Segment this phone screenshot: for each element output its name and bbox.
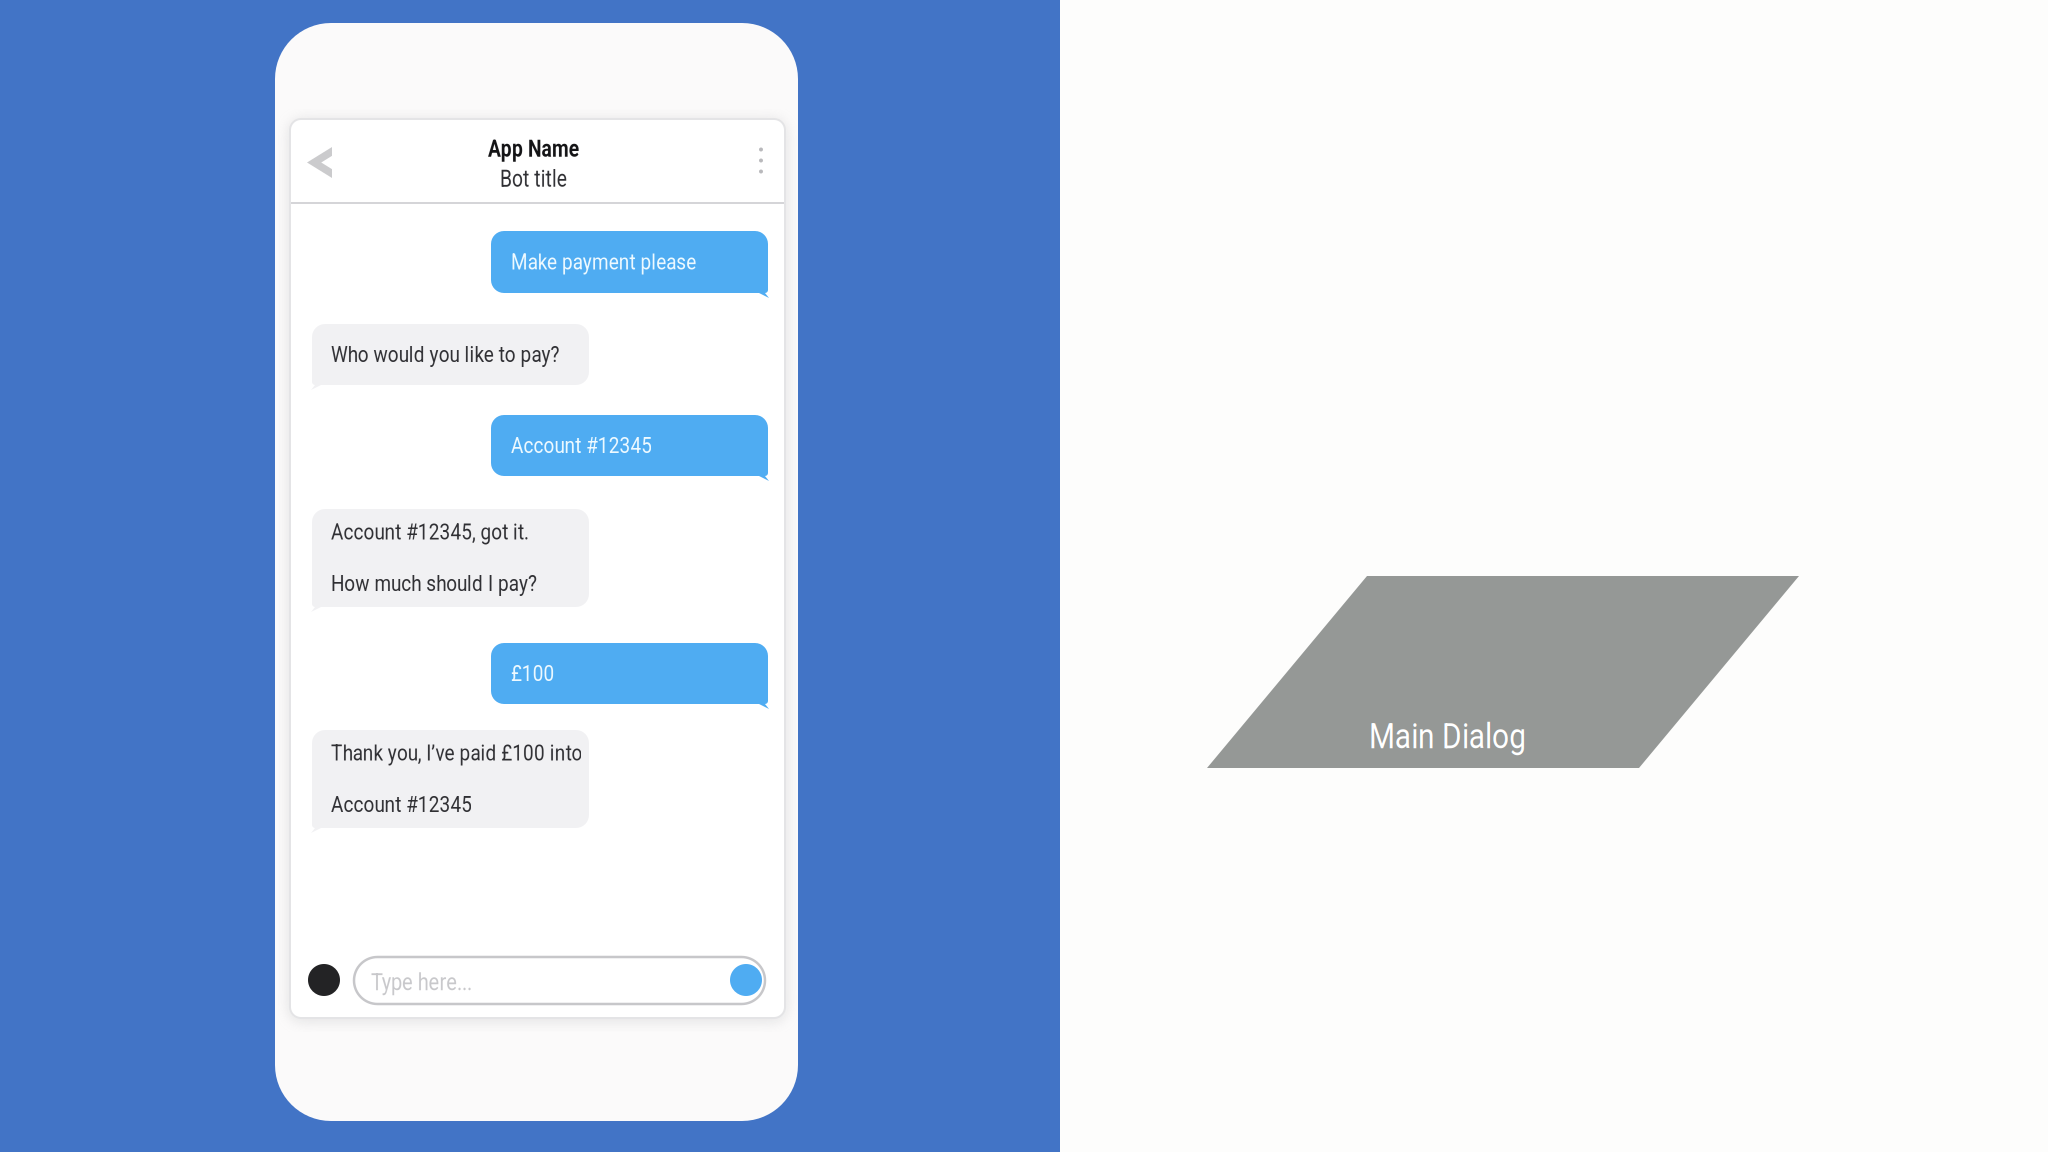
staticText: Account #12345 bbox=[511, 432, 680, 459]
button[interactable]: Account #12345, got it. bbox=[312, 509, 589, 607]
button[interactable]: Back bbox=[290, 119, 348, 202]
staticText: Bot title bbox=[491, 164, 575, 193]
staticText: Type here... bbox=[371, 968, 492, 996]
staticText: How much should I pay? bbox=[331, 570, 578, 597]
button[interactable]: Thank you, I’ve paid £100 into bbox=[312, 730, 589, 828]
staticText: Main Dialog bbox=[1369, 716, 1551, 757]
staticText: Who would you like to pay? bbox=[331, 341, 605, 368]
staticText: Thank you, I’ve paid £100 into bbox=[331, 739, 632, 766]
staticText: Make payment please bbox=[511, 248, 733, 275]
staticText: App Name bbox=[476, 134, 590, 162]
button[interactable]: Main Dialog bbox=[1207, 576, 1799, 768]
button[interactable]: More options bbox=[737, 119, 785, 202]
button[interactable]: Account #12345 bbox=[491, 415, 768, 476]
staticText: £100 bbox=[511, 660, 563, 687]
staticText: Account #12345 bbox=[331, 791, 500, 818]
button[interactable]: Make payment please bbox=[491, 231, 768, 293]
button[interactable]: Who would you like to pay? bbox=[312, 324, 589, 385]
button[interactable]: £100 bbox=[491, 643, 768, 704]
button[interactable]: Profile bbox=[308, 964, 340, 996]
staticText: Account #12345, got it. bbox=[331, 518, 568, 545]
button[interactable]: Type a message bbox=[354, 957, 765, 1004]
